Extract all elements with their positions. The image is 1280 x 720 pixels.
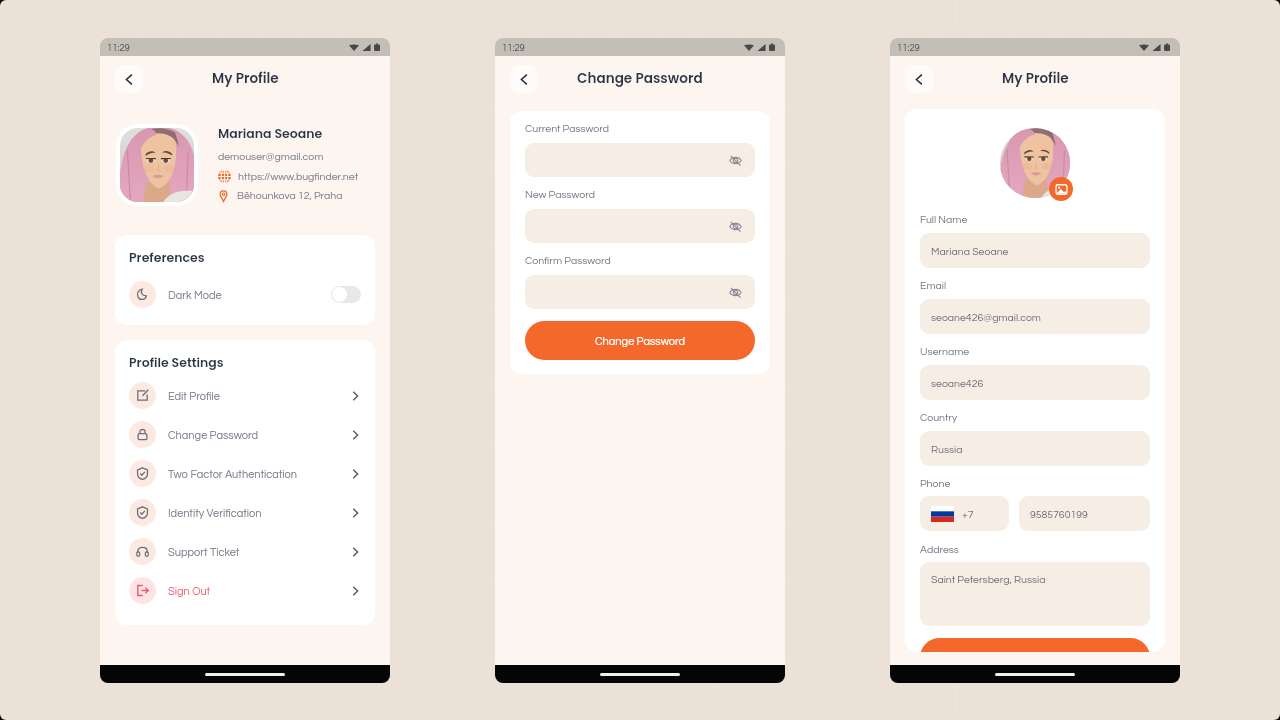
staticText: My Profile [1002,70,1069,88]
button[interactable]: Back [905,65,933,93]
staticText: seoane426@gmail.com [931,310,1041,324]
other: Show password [729,220,742,233]
staticText: Change Password [577,70,703,88]
staticText: Current Password [525,121,609,135]
staticText: Dark Mode [168,287,222,302]
button[interactable]: Save Changes [920,638,1150,652]
staticText: Two Factor Authentication [168,466,298,481]
staticText: Russia [931,442,963,456]
staticText: demouser@gmail.com [218,149,324,163]
button[interactable]: Saint Petersberg, Russia [920,562,1150,626]
staticText: Edit Profile [168,388,220,403]
staticText: Sign Out [168,583,211,598]
button[interactable]: Show password [525,275,755,309]
button[interactable]: Back [115,65,143,93]
staticText: Full Name [920,212,968,226]
staticText: Email [920,278,947,292]
staticText: Support Ticket [168,544,240,559]
other: Show password [729,286,742,299]
staticText: Confirm Password [525,253,611,267]
button[interactable]: Show password [525,209,755,243]
button[interactable]: +7 [920,496,1009,531]
staticText: https://www.bugfinder.net [238,169,359,183]
button[interactable]: Change Password [525,321,755,360]
button[interactable]: Change photo [1049,177,1073,201]
staticText: Saint Petersberg, Russia [931,572,1046,586]
button[interactable]: Sign Out [129,571,361,610]
button[interactable]: Change Password [129,415,361,454]
staticText: +7 [962,507,974,521]
staticText: Mariana Seoane [218,126,323,143]
staticText: Change Password [168,427,259,442]
button[interactable]: seoane426 [920,365,1150,400]
button[interactable]: Two Factor Authentication [129,454,361,493]
staticText: New Password [525,187,595,201]
other: Show password [729,154,742,167]
staticText: 11:29 [502,41,525,54]
button[interactable]: Identity Verification [129,493,361,532]
staticText: Preferences [129,250,205,267]
button[interactable]: Back [510,65,538,93]
staticText: seoane426 [931,376,984,390]
staticText: Profile Settings [129,355,224,372]
staticText: Běhounkova 12, Praha [237,188,343,202]
staticText: 11:29 [897,41,920,54]
staticText: Change Password [595,333,686,348]
staticText: 11:29 [107,41,130,54]
button[interactable]: Russia [920,431,1150,466]
staticText: Address [920,542,959,556]
button[interactable]: 9585760199 [1019,496,1150,531]
button[interactable]: Edit Profile [129,376,361,415]
staticText: 9585760199 [1030,507,1088,521]
staticText: Country [920,410,958,424]
button[interactable]: seoane426@gmail.com [920,299,1150,334]
button[interactable]: Show password [525,143,755,177]
staticText: Phone [920,476,951,490]
staticText: Username [920,344,970,358]
staticText: Identity Verification [168,505,262,520]
button[interactable]: Dark Mode [129,278,361,310]
button[interactable]: Support Ticket [129,532,361,571]
staticText: My Profile [212,70,279,88]
staticText: Mariana Seoane [931,244,1009,258]
button[interactable]: Mariana Seoane [920,233,1150,268]
